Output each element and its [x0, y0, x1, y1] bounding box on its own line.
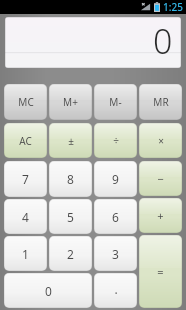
staticText: 7 [22, 171, 29, 187]
staticText: + [157, 208, 164, 223]
staticText: . [114, 281, 118, 297]
staticText: MC [18, 95, 34, 109]
staticText: 0 [153, 18, 173, 64]
staticText: 8 [67, 171, 74, 187]
button[interactable]: 3 [94, 236, 137, 271]
staticText: M+ [63, 95, 78, 109]
button[interactable]: 2 [49, 236, 92, 271]
button[interactable]: = [139, 235, 182, 308]
staticText: 2 [67, 246, 74, 262]
button[interactable]: 6 [94, 199, 137, 234]
staticText: AC [19, 134, 32, 148]
button[interactable]: ± [49, 123, 92, 158]
staticText: 4 [22, 209, 29, 225]
staticText: 1 [22, 246, 29, 262]
button[interactable]: − [139, 161, 182, 196]
button[interactable]: + [139, 198, 182, 233]
staticText: M- [109, 95, 122, 109]
button[interactable]: 8 [49, 161, 92, 197]
button[interactable]: 0 [4, 273, 92, 308]
staticText: − [157, 171, 164, 186]
staticText: MR [153, 95, 169, 109]
staticText: 9 [112, 171, 119, 187]
button[interactable]: × [139, 123, 182, 158]
staticText: 1:25 [163, 0, 183, 14]
staticText: ± [68, 134, 74, 148]
button[interactable]: M- [94, 84, 137, 120]
staticText: = [157, 264, 164, 279]
staticText: ÷ [113, 134, 119, 148]
button[interactable]: AC [4, 123, 47, 158]
button[interactable]: 7 [4, 161, 47, 197]
button[interactable]: 5 [49, 199, 92, 234]
button[interactable]: ÷ [94, 123, 137, 158]
button[interactable]: 0 [5, 17, 181, 68]
button[interactable]: MR [139, 84, 182, 120]
button[interactable]: M+ [49, 84, 92, 120]
button[interactable]: 1 [4, 236, 47, 271]
staticText: 5 [67, 209, 74, 225]
staticText: 3 [112, 246, 119, 262]
staticText: 6 [112, 209, 119, 225]
staticText: × [158, 134, 164, 148]
staticText: 0 [45, 283, 52, 299]
button[interactable]: 4 [4, 199, 47, 234]
button[interactable]: . [94, 273, 137, 308]
button[interactable]: MC [4, 84, 47, 120]
button[interactable]: 9 [94, 161, 137, 197]
